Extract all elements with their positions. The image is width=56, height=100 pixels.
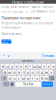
staticText: ч bbox=[13, 76, 15, 81]
button[interactable]: т bbox=[31, 76, 35, 81]
staticText: б bbox=[41, 76, 43, 81]
staticText: информацию bbox=[1, 26, 20, 29]
staticText: н bbox=[25, 64, 27, 69]
button[interactable]: й bbox=[1, 64, 5, 69]
staticText: м bbox=[22, 76, 25, 81]
staticText: ^ bbox=[2, 53, 4, 58]
staticText: ш bbox=[33, 64, 37, 69]
button[interactable]: ч bbox=[12, 76, 16, 81]
button[interactable]: ☻ bbox=[10, 82, 14, 87]
button[interactable]: к bbox=[15, 64, 18, 69]
staticText: Копия/Скрытая, От: user@example.com bbox=[1, 10, 54, 13]
staticText: л bbox=[36, 70, 38, 75]
button[interactable]: ⇧ bbox=[2, 76, 7, 81]
button[interactable]: х bbox=[47, 64, 51, 69]
button[interactable]: з bbox=[42, 64, 46, 69]
button[interactable]: у bbox=[10, 64, 14, 69]
staticText: Идентификатор bbox=[1, 32, 22, 36]
staticText: щ bbox=[37, 64, 41, 69]
staticText: Проверить bbox=[1, 38, 11, 45]
button[interactable]: е bbox=[19, 64, 23, 69]
button[interactable]: щ bbox=[38, 64, 41, 69]
staticText: ☻ bbox=[11, 83, 14, 86]
button[interactable]: ь bbox=[35, 76, 39, 81]
button[interactable]: 123 bbox=[3, 82, 9, 87]
button[interactable]: Готово bbox=[41, 52, 55, 59]
button[interactable]: ю bbox=[44, 76, 48, 81]
button[interactable]: р bbox=[26, 70, 30, 75]
staticText: я bbox=[9, 76, 11, 81]
staticText: 123 bbox=[3, 82, 9, 86]
button[interactable]: б bbox=[40, 76, 44, 81]
staticText: ь bbox=[36, 76, 38, 81]
staticText: ц bbox=[6, 64, 8, 69]
staticText: т bbox=[32, 76, 34, 81]
button[interactable]: г bbox=[28, 64, 32, 69]
staticText: и bbox=[27, 76, 29, 81]
staticText: ⌫ bbox=[49, 76, 55, 80]
button[interactable]: ы bbox=[8, 70, 12, 75]
staticText: ж bbox=[45, 70, 48, 75]
staticText: д bbox=[41, 70, 43, 75]
staticText: х bbox=[48, 64, 50, 69]
staticText: г bbox=[29, 64, 31, 69]
staticText: Проверка по карточке bbox=[1, 15, 40, 20]
staticText: с bbox=[18, 76, 20, 81]
button[interactable]: Пробел bbox=[15, 82, 41, 87]
button[interactable]: в bbox=[12, 70, 16, 75]
button[interactable]: м bbox=[21, 76, 25, 81]
button[interactable]: ш bbox=[33, 64, 37, 69]
button[interactable]: ⌫ bbox=[49, 76, 54, 81]
staticText: в bbox=[13, 70, 15, 75]
staticText: ъ bbox=[52, 64, 54, 69]
staticText: э bbox=[50, 70, 52, 75]
button[interactable]: л bbox=[35, 70, 39, 75]
button[interactable]: с bbox=[17, 76, 21, 81]
staticText: Кому: Иван Иванов, Мария Петрова bbox=[1, 5, 52, 9]
staticText: Готово bbox=[42, 82, 52, 86]
button[interactable]: п bbox=[21, 70, 25, 75]
button[interactable]: Проверить bbox=[1, 39, 11, 44]
button[interactable]: э bbox=[49, 70, 53, 75]
staticText: «можно» bbox=[22, 59, 34, 63]
staticText: ф bbox=[3, 70, 6, 75]
button[interactable]: ж bbox=[44, 70, 48, 75]
button[interactable]: и bbox=[26, 76, 30, 81]
staticText: Пробел bbox=[23, 82, 34, 86]
button[interactable]: ъ bbox=[51, 64, 55, 69]
staticText: у bbox=[11, 64, 13, 69]
staticText: з bbox=[43, 64, 45, 69]
button[interactable]: Previous field bbox=[1, 52, 6, 59]
staticText: Введите идентификатор и проверьте bbox=[1, 21, 52, 25]
staticText: ⇧ bbox=[3, 76, 6, 80]
staticText: е bbox=[20, 64, 22, 69]
button[interactable]: Готово bbox=[42, 82, 53, 87]
staticText: а bbox=[18, 70, 20, 75]
button[interactable]: о bbox=[31, 70, 35, 75]
button[interactable]: ц bbox=[5, 64, 9, 69]
button[interactable]: н bbox=[24, 64, 28, 69]
button[interactable]: я bbox=[8, 76, 12, 81]
staticText: ы bbox=[8, 70, 11, 75]
staticText: ю bbox=[45, 76, 48, 81]
staticText: v bbox=[7, 53, 9, 58]
button[interactable]: Next field bbox=[6, 52, 11, 59]
staticText: р bbox=[27, 70, 29, 75]
staticText: о bbox=[32, 70, 34, 75]
staticText: Новое сообщение bbox=[12, 0, 44, 4]
staticText: к bbox=[15, 64, 17, 69]
staticText: п bbox=[22, 70, 24, 75]
button[interactable]: а bbox=[17, 70, 21, 75]
staticText: й bbox=[2, 64, 4, 69]
staticText: Готово bbox=[42, 53, 54, 58]
button[interactable]: д bbox=[40, 70, 44, 75]
button[interactable]: ф bbox=[3, 70, 7, 75]
